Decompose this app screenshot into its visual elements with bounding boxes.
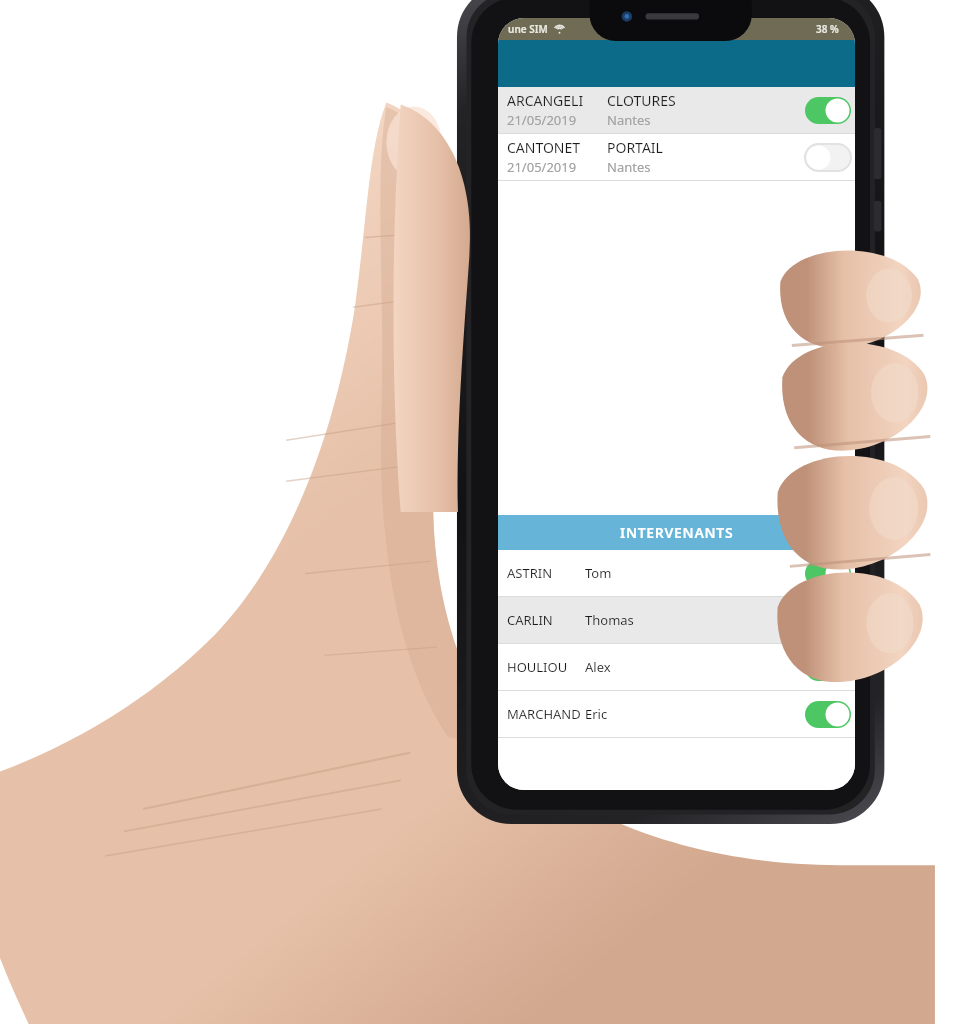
button[interactable]: Désactivé <box>805 607 851 634</box>
staticText: Nantes <box>607 158 651 176</box>
button[interactable]: HOULIOU <box>498 644 855 690</box>
staticText: PORTAIL <box>607 138 663 157</box>
button[interactable]: Ajouter un intervenant <box>823 522 845 544</box>
button[interactable]: MARCHAND <box>498 691 855 737</box>
staticText: Nantes <box>607 111 651 129</box>
staticText: ARCANGELI <box>507 91 584 110</box>
staticText: une SIM <box>508 22 548 36</box>
staticText: Thomas <box>585 611 805 629</box>
staticText: HOULIOU <box>507 658 585 676</box>
button[interactable]: ARCANGELI <box>498 87 855 133</box>
button[interactable]: Activé <box>805 560 851 587</box>
staticText: ASTRIN <box>507 564 585 582</box>
staticText: CARLIN <box>507 611 585 629</box>
button[interactable]: CARLIN <box>498 597 855 643</box>
staticText: CANTONET <box>507 138 581 157</box>
button[interactable]: Activé <box>805 654 851 681</box>
staticText: Eric <box>585 705 805 723</box>
staticText: INTERVENANTS <box>620 523 734 542</box>
staticText: MARCHAND <box>507 705 585 723</box>
staticText: 38 % <box>816 22 839 36</box>
button[interactable]: Désactivé <box>805 144 851 171</box>
button[interactable]: CANTONET <box>498 134 855 180</box>
staticText: 21/05/2019 <box>507 158 577 176</box>
staticText: CLOTURES <box>607 91 676 110</box>
button[interactable]: ASTRIN <box>498 550 855 596</box>
button[interactable]: Activé <box>805 97 851 124</box>
staticText: Alex <box>585 658 805 676</box>
button[interactable]: INTERVENANTS <box>498 515 855 550</box>
staticText: 21/05/2019 <box>507 111 577 129</box>
button[interactable]: Activé <box>805 701 851 728</box>
staticText: Tom <box>585 564 805 582</box>
